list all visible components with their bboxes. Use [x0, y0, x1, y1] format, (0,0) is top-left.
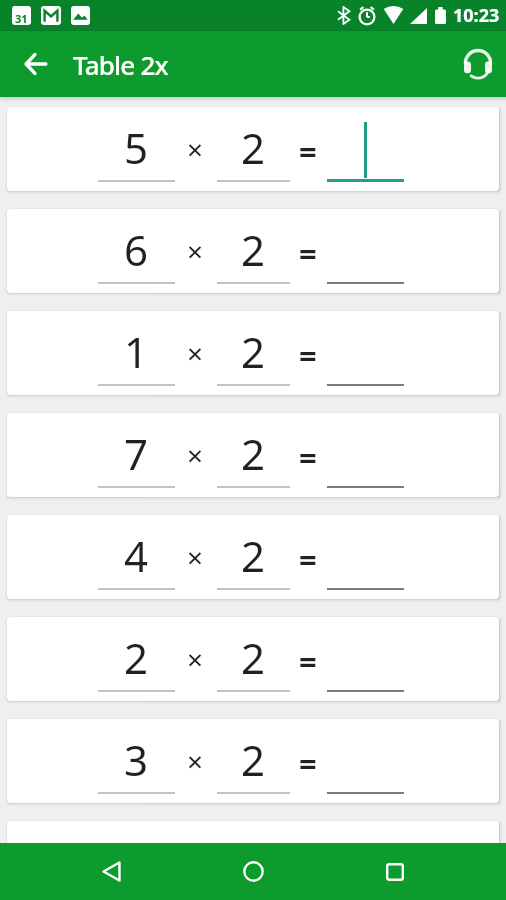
staticText: 2	[241, 323, 266, 380]
staticText: =	[299, 232, 317, 274]
staticText: 10:23	[453, 3, 500, 28]
staticText: ×	[187, 334, 204, 372]
button[interactable]: 5	[7, 107, 499, 191]
button[interactable]: 3	[7, 719, 499, 803]
staticText: 2	[241, 425, 266, 482]
staticText: ×	[187, 640, 204, 678]
button[interactable]	[64, 843, 158, 900]
staticText: 1	[124, 323, 149, 380]
staticText: 2	[241, 119, 266, 176]
staticText: =	[299, 130, 317, 172]
button[interactable]	[456, 42, 500, 86]
staticText: 2	[241, 221, 266, 278]
staticText: ×	[187, 742, 204, 780]
staticText: ×	[187, 436, 204, 474]
staticText: =	[299, 436, 317, 478]
staticText: 31	[15, 11, 28, 25]
staticText: ×	[187, 130, 204, 168]
button[interactable]: 6	[7, 209, 499, 293]
staticText: 2	[124, 629, 149, 686]
staticText: 5	[124, 119, 149, 176]
staticText: =	[299, 538, 317, 580]
button[interactable]	[206, 843, 300, 900]
staticText: 3	[124, 731, 149, 788]
button[interactable]: 2	[7, 617, 499, 701]
staticText: =	[299, 334, 317, 376]
staticText: 2	[241, 731, 266, 788]
staticText: =	[299, 742, 317, 784]
button[interactable]: 4	[7, 515, 499, 599]
staticText: =	[299, 640, 317, 682]
button[interactable]: 7	[7, 413, 499, 497]
button[interactable]	[348, 843, 442, 900]
staticText: ×	[187, 232, 204, 270]
staticText: ×	[187, 538, 204, 576]
button[interactable]	[14, 42, 58, 86]
staticText: 2	[241, 629, 266, 686]
staticText: 4	[124, 527, 149, 584]
button[interactable]: 1	[7, 311, 499, 395]
staticText: 2	[241, 527, 266, 584]
staticText: Table 2x	[73, 47, 168, 82]
staticText: 7	[124, 425, 149, 482]
staticText: 6	[124, 221, 149, 278]
